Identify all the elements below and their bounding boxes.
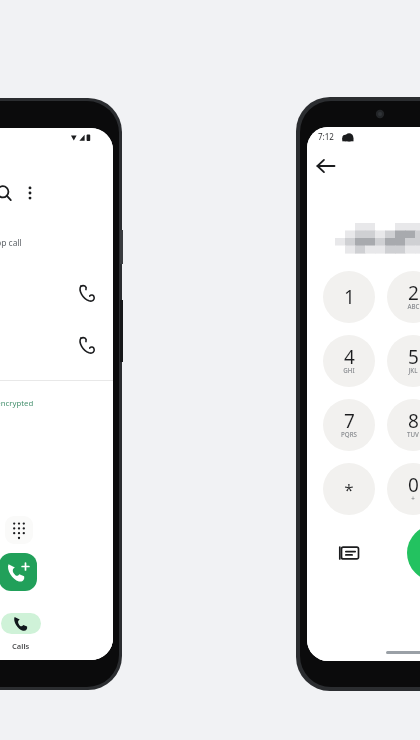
staticText: * bbox=[344, 478, 354, 501]
staticText: + bbox=[411, 494, 415, 502]
button[interactable]: 7 bbox=[323, 399, 375, 451]
button[interactable]: 8 bbox=[387, 399, 420, 451]
staticText: JKL bbox=[408, 366, 418, 374]
staticText: TUV bbox=[407, 430, 419, 438]
button[interactable]: 1 bbox=[323, 271, 375, 323]
staticText: 7:12 bbox=[318, 131, 334, 142]
staticText: 8 bbox=[408, 408, 419, 434]
button[interactable]: 2 bbox=[387, 271, 420, 323]
staticText: ABC bbox=[407, 302, 420, 310]
button[interactable]: 0 bbox=[387, 463, 420, 515]
staticText: 5 bbox=[408, 344, 419, 370]
staticText: Calls bbox=[12, 641, 30, 651]
button[interactable]: 4 bbox=[323, 335, 375, 387]
staticText: Your personal calls are end-to-end encry… bbox=[0, 398, 34, 409]
staticText: 1 bbox=[344, 284, 355, 310]
button[interactable] bbox=[0, 268, 113, 320]
button[interactable]: * bbox=[323, 463, 375, 515]
staticText: 4 bbox=[344, 344, 355, 370]
staticText: 0 bbox=[408, 472, 419, 498]
button[interactable]: More options bbox=[14, 177, 46, 209]
button[interactable] bbox=[0, 320, 113, 372]
staticText: 7 bbox=[344, 408, 355, 434]
staticText: GHI bbox=[343, 366, 355, 374]
button[interactable]: Create call link for your WhatsApp call bbox=[0, 228, 51, 264]
staticText: 2 bbox=[408, 280, 419, 306]
staticText: Create call link for your WhatsApp call bbox=[0, 237, 22, 249]
button[interactable]: New call bbox=[0, 553, 37, 591]
button[interactable]: Back bbox=[311, 151, 341, 181]
button[interactable]: Dialpad bbox=[5, 516, 33, 544]
staticText: PQRS bbox=[341, 430, 357, 438]
button[interactable]: Calls bbox=[0, 612, 49, 654]
button[interactable]: Message bbox=[333, 537, 365, 569]
button[interactable]: Call bbox=[407, 525, 420, 581]
button[interactable]: Search bbox=[0, 177, 20, 209]
button[interactable]: 5 bbox=[387, 335, 420, 387]
